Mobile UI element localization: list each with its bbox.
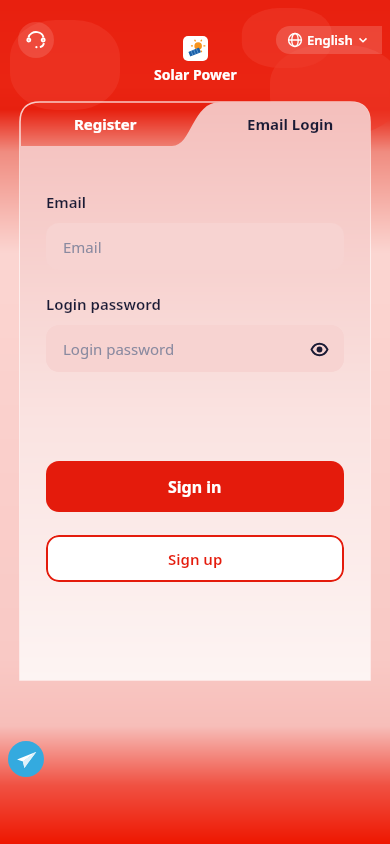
button[interactable]: English	[276, 26, 382, 54]
button[interactable]: Register	[20, 102, 190, 146]
button[interactable]: Sign in	[46, 461, 344, 512]
staticText: Login password	[46, 294, 161, 314]
staticText: Login password	[63, 339, 175, 359]
staticText: Solar Power	[154, 65, 237, 84]
staticText: Sign up	[168, 549, 223, 569]
button[interactable]: Show password	[304, 334, 334, 364]
staticText: Sign in	[168, 476, 222, 498]
button[interactable]: Email Login	[210, 102, 370, 146]
button[interactable]: Login password	[46, 325, 344, 372]
button[interactable]: Customer support	[18, 22, 54, 58]
button[interactable]: Sign up	[46, 535, 344, 582]
staticText: English	[307, 31, 353, 49]
staticText: Email	[46, 192, 87, 212]
button[interactable]: Email	[46, 223, 344, 270]
staticText: Email Login	[247, 114, 334, 134]
staticText: Email	[63, 237, 102, 257]
button[interactable]: Telegram	[8, 741, 44, 777]
staticText: Register	[74, 114, 137, 134]
